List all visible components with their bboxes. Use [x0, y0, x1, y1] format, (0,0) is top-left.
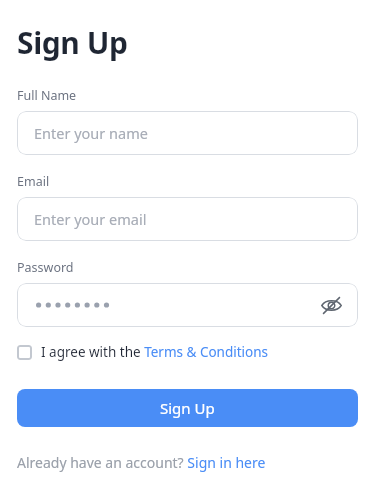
button[interactable]: Enter your name	[17, 111, 358, 155]
staticText: Email	[17, 173, 50, 190]
staticText: Sign Up	[17, 22, 128, 63]
button[interactable]: Sign Up	[17, 389, 358, 427]
staticText: Already have an account? Sign in here	[17, 453, 266, 472]
button[interactable]: Show password	[17, 283, 358, 327]
staticText: Full Name	[17, 87, 77, 104]
button[interactable]: Already have an account? Sign in here	[17, 453, 266, 472]
button[interactable]: Enter your email	[17, 197, 358, 241]
staticText: I agree with the Terms & Conditions	[41, 343, 269, 361]
staticText: Sign Up	[160, 398, 215, 418]
button[interactable]: I agree with the Terms & Conditions	[17, 341, 269, 363]
staticText: Password	[17, 259, 74, 276]
staticText: Enter your name	[34, 123, 148, 143]
staticText: Enter your email	[34, 209, 147, 229]
button[interactable]: Show password	[316, 290, 346, 320]
